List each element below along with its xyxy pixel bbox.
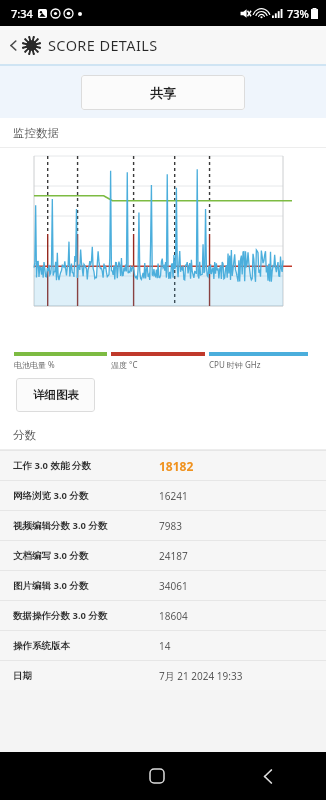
button[interactable]: Back — [251, 759, 285, 793]
staticText: 温度 °C — [111, 359, 138, 370]
button[interactable]: 详细图表 — [16, 378, 95, 412]
button[interactable]: 操作系统版本 — [0, 631, 326, 660]
staticText: 监控数据 — [13, 126, 59, 140]
staticText: 分数 — [13, 428, 36, 442]
button[interactable]: 数据操作分数 3.0 分数 — [0, 601, 326, 630]
staticText: 34061 — [159, 579, 188, 593]
button[interactable]: Home — [140, 759, 174, 793]
staticText: 7月 21 2024 19:33 — [159, 669, 243, 683]
staticText: 73% — [287, 6, 309, 21]
staticText: 工作 3.0 效能 分数 — [13, 459, 159, 472]
button[interactable]: 工作 3.0 效能 分数 — [0, 451, 326, 480]
staticText: CPU 时钟 GHz — [209, 359, 261, 370]
button[interactable]: 共享 — [81, 75, 245, 110]
staticText: 18604 — [159, 609, 188, 623]
staticText: 图片编辑 3.0 分数 — [13, 579, 159, 592]
staticText: 7:34 — [11, 6, 33, 21]
staticText: 共享 — [150, 85, 176, 101]
button[interactable]: 视频编辑分数 3.0 分数 — [0, 511, 326, 540]
staticText: 详细图表 — [33, 388, 79, 402]
button[interactable]: 文档编写 3.0 分数 — [0, 541, 326, 570]
staticText: 视频编辑分数 3.0 分数 — [13, 519, 159, 532]
staticText: 网络浏览 3.0 分数 — [13, 489, 159, 502]
button[interactable]: 日期 — [0, 661, 326, 690]
staticText: 18182 — [159, 458, 194, 474]
staticText: 24187 — [159, 549, 188, 563]
staticText: 日期 — [13, 670, 159, 682]
staticText: 14 — [159, 639, 171, 653]
button[interactable]: Back — [4, 36, 22, 54]
staticText: 操作系统版本 — [13, 640, 159, 652]
staticText: 16241 — [159, 489, 188, 503]
button[interactable]: 网络浏览 3.0 分数 — [0, 481, 326, 510]
staticText: SCORE DETAILS — [48, 35, 158, 55]
staticText: 电池电量 % — [14, 359, 55, 370]
staticText: 文档编写 3.0 分数 — [13, 549, 159, 562]
button[interactable]: 图片编辑 3.0 分数 — [0, 571, 326, 600]
staticText: 7983 — [159, 519, 182, 533]
staticText: 数据操作分数 3.0 分数 — [13, 609, 159, 622]
